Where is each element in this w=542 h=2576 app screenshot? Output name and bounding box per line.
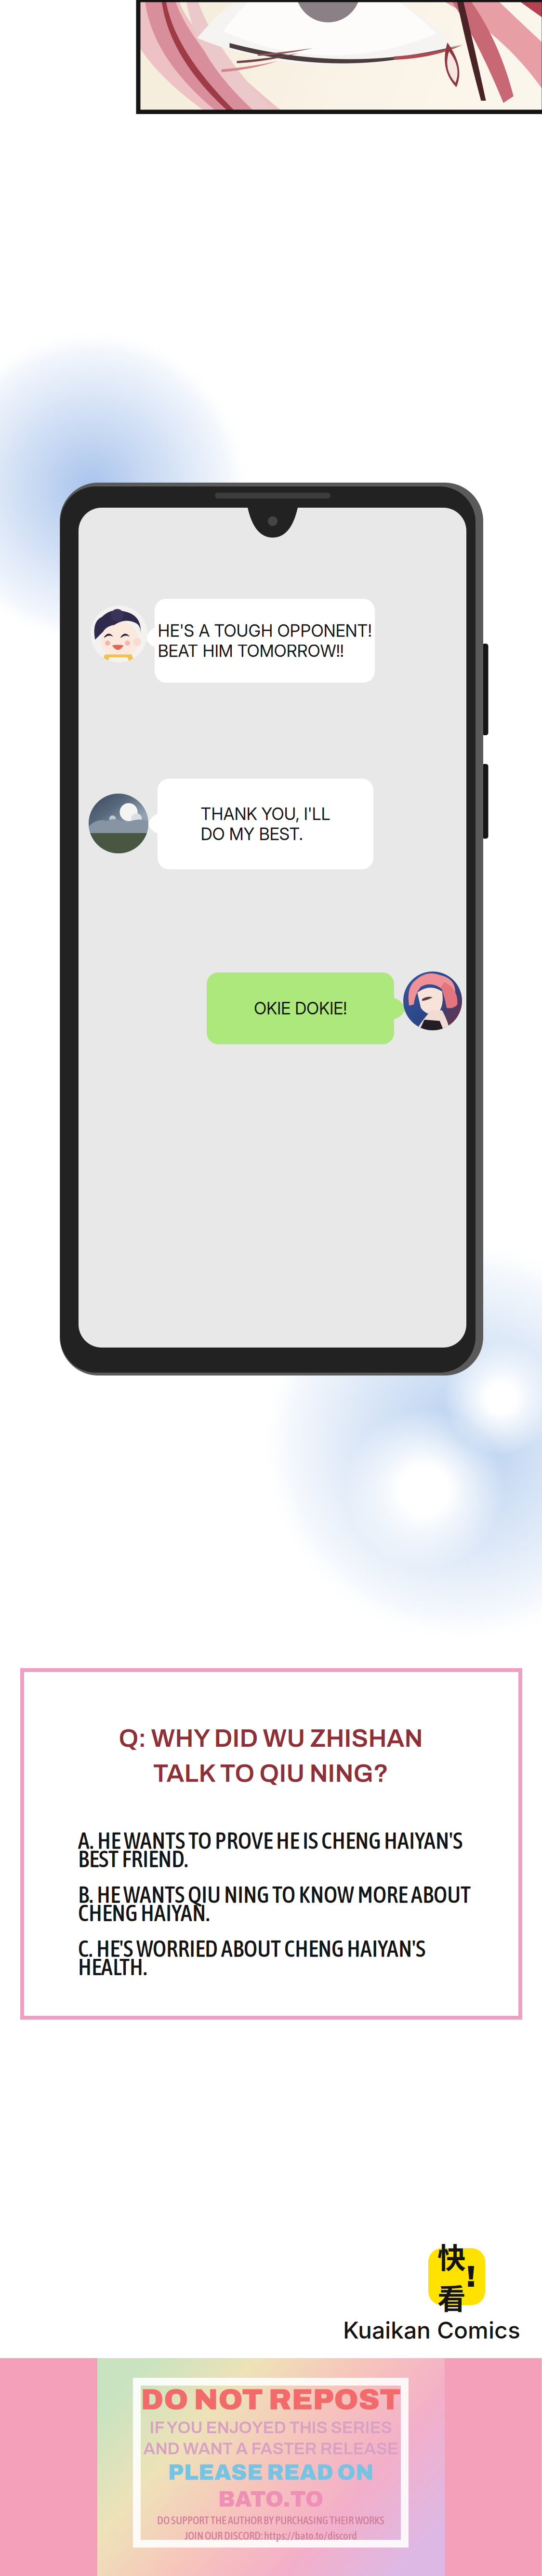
staticText: THANK YOU, I'LL DO MY BEST.	[201, 804, 330, 844]
staticText: Kuaikan Comics	[343, 2316, 520, 2344]
staticText: HE'S A TOUGH OPPONENT! BEAT HIM TOMORROW…	[158, 621, 372, 661]
staticText: B. HE WANTS QIU NING TO KNOW MORE ABOUT	[78, 1881, 471, 1908]
staticText: OKIE DOKIE!	[254, 998, 347, 1018]
staticText: BATO.TO	[218, 2487, 324, 2511]
staticText: HEALTH.	[78, 1954, 147, 1980]
staticText: C. HE'S WORRIED ABOUT CHENG HAIYAN'S	[78, 1935, 425, 1962]
staticText: A. HE WANTS TO PROVE HE IS CHENG HAIYAN'…	[78, 1827, 463, 1854]
staticText: JOIN OUR DISCORD: https://bato.to/discor…	[185, 2529, 357, 2542]
staticText: TALK TO QIU NING?	[153, 1760, 389, 1787]
staticText: DO SUPPORT THE AUTHOR BY PURCHASING THEI…	[157, 2514, 384, 2527]
staticText: BEST FRIEND.	[78, 1846, 188, 1872]
staticText: CHENG HAIYAN.	[78, 1900, 210, 1926]
staticText: IF YOU ENJOYED THIS SERIES	[150, 2418, 392, 2437]
staticText: 快看	[437, 2236, 466, 2318]
staticText: !	[466, 2260, 476, 2293]
staticText: PLEASE READ ON	[168, 2461, 374, 2484]
staticText: Q: WHY DID WU ZHISHAN	[119, 1725, 423, 1752]
staticText: DO NOT REPOST	[141, 2383, 401, 2416]
staticText: AND WANT A FASTER RELEASE	[143, 2440, 398, 2458]
